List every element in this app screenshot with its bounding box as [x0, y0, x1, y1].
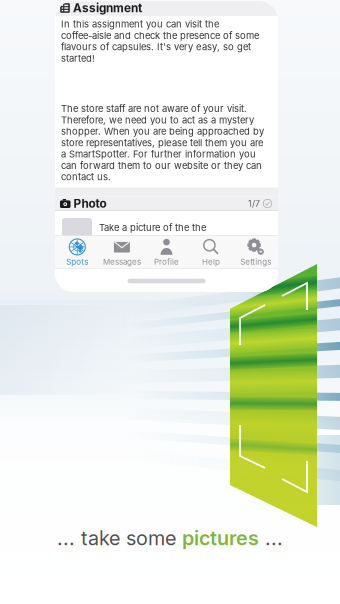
staticText: Messages: [103, 257, 141, 267]
staticText: Photo: [73, 196, 106, 211]
staticText: pictures: [182, 526, 259, 550]
staticText: Assignment: [73, 1, 142, 15]
staticText: Settings: [240, 257, 271, 267]
staticText: Help: [202, 257, 220, 267]
staticText: ... take some: [57, 526, 182, 550]
staticText: Take a picture of the the: [99, 222, 206, 233]
staticText: Spots: [66, 257, 88, 267]
button[interactable]: Spots: [55, 235, 100, 269]
staticText: In this assignment you can visit the cof…: [61, 18, 259, 64]
button[interactable]: Help: [189, 235, 233, 269]
staticText: The store staff are not aware of your vi…: [61, 103, 264, 183]
staticText: 1/7: [248, 198, 260, 209]
button[interactable]: Settings: [233, 235, 278, 269]
button[interactable]: Profile: [144, 235, 189, 269]
button[interactable]: Messages: [100, 235, 144, 269]
staticText: ...: [259, 526, 283, 550]
staticText: Profile: [154, 257, 179, 267]
